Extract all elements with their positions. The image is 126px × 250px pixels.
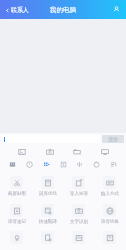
- button[interactable]: TextT: [95, 228, 124, 244]
- button[interactable]: 截屏贴图: [2, 175, 31, 198]
- staticText: 快速翻译: [39, 219, 57, 225]
- button[interactable]: 搜索: [102, 135, 124, 143]
- staticText: 输入方式: [101, 191, 119, 197]
- button[interactable]: FileLock: [33, 228, 62, 244]
- staticText: 导入短语: [70, 191, 88, 197]
- button[interactable]: List: [108, 159, 119, 170]
- button[interactable]: Folder: [70, 145, 83, 158]
- button[interactable]: 快速翻译: [33, 203, 62, 226]
- button[interactable]: 输入方式: [95, 175, 124, 198]
- staticText: 我的电脑: [50, 6, 76, 14]
- button[interactable]: Camera: [43, 145, 56, 158]
- button[interactable]: 文字识别: [64, 203, 93, 226]
- button[interactable]: Chinese: [58, 159, 69, 170]
- staticText: 搜索: [108, 136, 118, 142]
- button[interactable]: Upload: [2, 228, 31, 244]
- button[interactable]: Account: [111, 4, 122, 15]
- staticText: 联系人: [11, 6, 29, 14]
- button[interactable]: 词库优化: [33, 175, 62, 198]
- button[interactable]: Split: [64, 228, 93, 244]
- button[interactable]: Emoji: [7, 159, 18, 170]
- button[interactable]: Monitor: [98, 145, 111, 158]
- staticText: 截屏贴图: [8, 191, 26, 197]
- staticText: 词库优化: [39, 191, 57, 197]
- button[interactable]: Recent: [24, 159, 35, 170]
- button[interactable]: 联系人: [3, 4, 31, 16]
- button[interactable]: Voice: [74, 159, 85, 170]
- button[interactable]: 语音切换: [95, 203, 124, 226]
- button[interactable]: [2, 135, 100, 143]
- button[interactable]: 导入短语: [64, 175, 93, 198]
- button[interactable]: Shape: [91, 159, 102, 170]
- staticText: 文字识别: [70, 219, 88, 225]
- staticText: 语音速记: [8, 219, 26, 225]
- staticText: 语音切换: [101, 219, 119, 225]
- button[interactable]: 语音速记: [2, 203, 31, 226]
- button[interactable]: Apps: [41, 159, 52, 170]
- button[interactable]: Image: [15, 145, 28, 158]
